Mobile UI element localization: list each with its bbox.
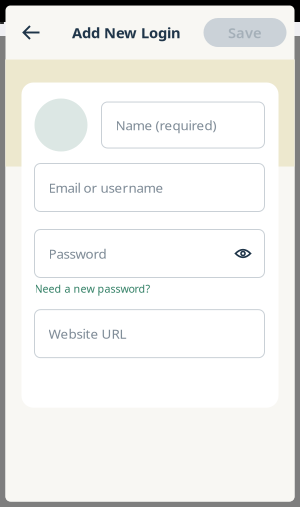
staticText: Password <box>48 245 106 262</box>
button[interactable]: Name (required) <box>101 102 264 148</box>
button[interactable]: Back <box>13 14 49 50</box>
staticText: Need a new password? <box>34 281 150 296</box>
button[interactable]: Email or username <box>34 163 264 211</box>
button[interactable]: Website URL <box>34 310 264 358</box>
staticText: Add New Login <box>72 23 181 42</box>
button[interactable]: Save <box>203 18 286 47</box>
staticText: Website URL <box>48 325 126 342</box>
button[interactable]: Need a new password? <box>34 277 150 300</box>
staticText: Email or username <box>48 179 163 196</box>
staticText: Name (required) <box>115 116 216 134</box>
staticText: Save <box>228 23 262 42</box>
button[interactable]: Password <box>34 229 264 277</box>
